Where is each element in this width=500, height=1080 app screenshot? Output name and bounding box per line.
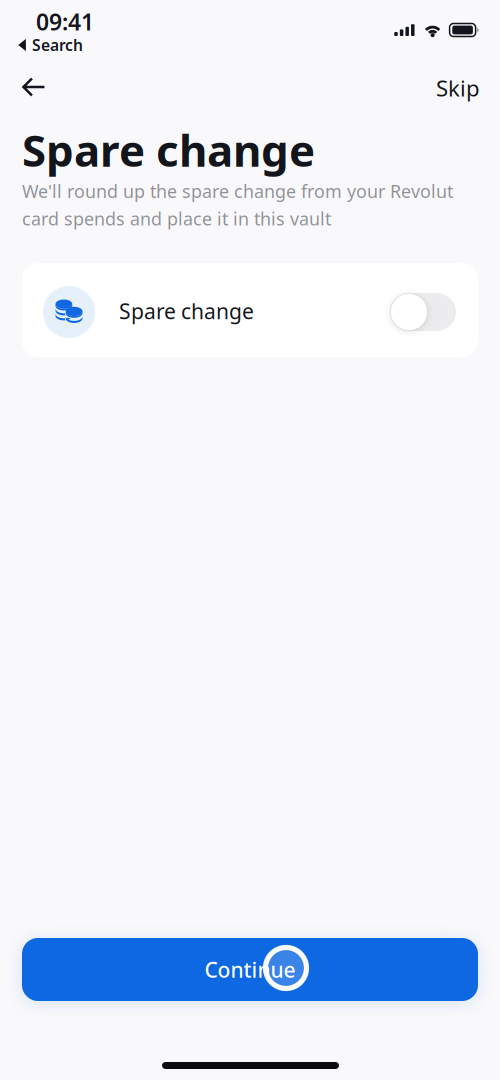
button[interactable]: Skip <box>408 66 480 110</box>
staticText: We'll round up the spare change from you… <box>22 179 453 203</box>
button[interactable]: Back <box>10 65 58 109</box>
staticText: Continue <box>204 955 295 984</box>
button[interactable]: Spare change <box>22 263 478 357</box>
staticText: card spends and place it in this vault <box>22 206 331 231</box>
button[interactable]: Back to Search <box>18 34 90 56</box>
staticText: Skip <box>436 73 480 103</box>
staticText: Spare change <box>119 297 254 325</box>
staticText: Search <box>32 34 83 56</box>
button[interactable]: Continue <box>22 938 478 1001</box>
staticText: 09:41 <box>36 6 94 37</box>
staticText: Spare change <box>22 120 315 180</box>
